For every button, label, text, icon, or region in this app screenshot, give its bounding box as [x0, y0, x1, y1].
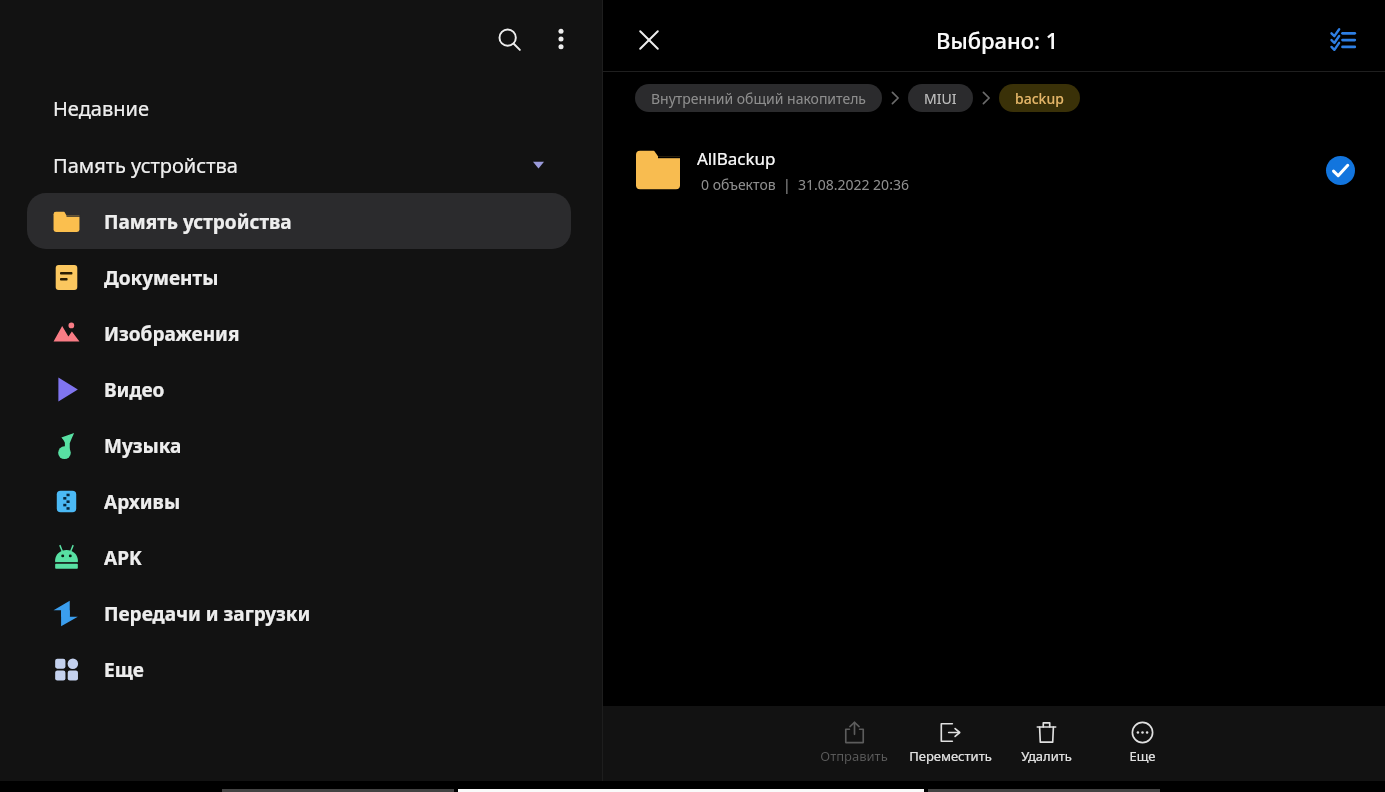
- staticText: Выбрано: 1: [936, 25, 1059, 55]
- button[interactable]: Search: [483, 13, 535, 65]
- button[interactable]: Передачи и загрузки: [27, 585, 571, 641]
- staticText: Изображения: [104, 321, 240, 347]
- staticText: Документы: [104, 265, 219, 291]
- button[interactable]: Архивы: [27, 473, 571, 529]
- button[interactable]: Select all: [1321, 18, 1365, 62]
- button[interactable]: Память устройства: [27, 193, 571, 249]
- staticText: Память устройства: [104, 209, 292, 235]
- button[interactable]: Отправить: [806, 716, 902, 765]
- staticText: MIUI: [924, 89, 957, 108]
- button[interactable]: Музыка: [27, 417, 571, 473]
- button[interactable]: Еще: [1094, 716, 1190, 765]
- button[interactable]: Переместить: [902, 716, 998, 765]
- staticText: Музыка: [104, 433, 182, 459]
- staticText: Передачи и загрузки: [104, 601, 311, 627]
- button[interactable]: Внутренний общий накопитель: [635, 84, 882, 112]
- staticText: Видео: [104, 377, 165, 403]
- staticText: 0 объектов | 31.08.2022 20:36: [701, 175, 909, 194]
- staticText: Удалить: [1021, 747, 1072, 765]
- staticText: Память устройства: [53, 152, 238, 179]
- button[interactable]: backup: [999, 84, 1080, 112]
- staticText: Еще: [1129, 747, 1156, 765]
- staticText: Еще: [104, 657, 144, 683]
- button[interactable]: Изображения: [27, 305, 571, 361]
- button[interactable]: AllBackup: [603, 134, 1385, 206]
- button[interactable]: Документы: [27, 249, 571, 305]
- button[interactable]: APK: [27, 529, 571, 585]
- staticText: Архивы: [104, 489, 181, 515]
- staticText: Переместить: [909, 747, 992, 765]
- button[interactable]: Еще: [27, 641, 571, 697]
- staticText: APK: [104, 545, 142, 571]
- button[interactable]: Удалить: [998, 716, 1094, 765]
- staticText: Недавние: [53, 95, 149, 122]
- button[interactable]: MIUI: [908, 84, 973, 112]
- button[interactable]: Close selection: [625, 16, 673, 64]
- staticText: backup: [1015, 89, 1064, 108]
- staticText: AllBackup: [697, 147, 776, 170]
- button[interactable]: Видео: [27, 361, 571, 417]
- button[interactable]: Selected: [1317, 147, 1363, 193]
- staticText: Внутренний общий накопитель: [651, 89, 866, 108]
- staticText: Отправить: [820, 747, 888, 765]
- button[interactable]: More options: [535, 13, 587, 65]
